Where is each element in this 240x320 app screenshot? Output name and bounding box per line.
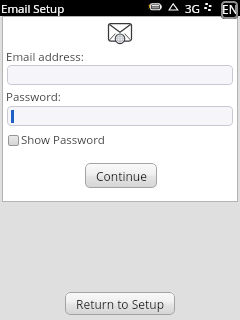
- staticText: Continue: [96, 168, 147, 184]
- staticText: Password:: [6, 89, 61, 105]
- staticText: EN: [222, 1, 238, 17]
- staticText: Return to Setup: [76, 296, 165, 312]
- button[interactable]: Show Password: [8, 132, 105, 148]
- button[interactable]: [7, 106, 233, 126]
- button[interactable]: [7, 65, 233, 85]
- button[interactable]: Return to Setup: [65, 292, 175, 315]
- staticText: Show Password: [21, 132, 105, 148]
- staticText: Email Setup: [1, 1, 65, 17]
- button[interactable]: Input language English: [221, 1, 238, 19]
- other: Alert: [168, 3, 179, 11]
- staticText: Email address:: [6, 49, 84, 65]
- other: Battery charging: [146, 2, 163, 13]
- staticText: 3G: [185, 1, 200, 17]
- other: Signal strength: [203, 2, 214, 13]
- button[interactable]: Continue: [85, 163, 157, 188]
- other: Email account: [107, 22, 137, 48]
